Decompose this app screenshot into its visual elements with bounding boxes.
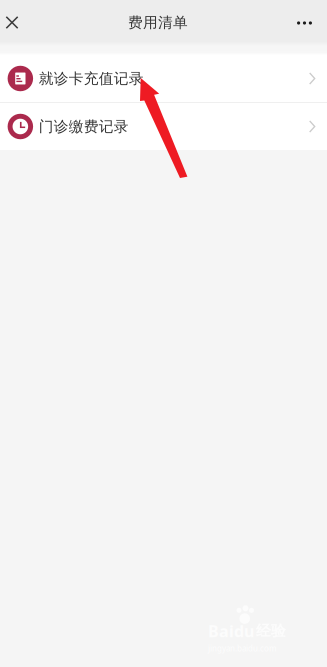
button[interactable]: More options (282, 0, 327, 42)
staticText: 就诊卡充值记录 (39, 69, 144, 87)
staticText: 门诊缴费记录 (39, 117, 129, 135)
button[interactable]: 门诊缴费记录 (0, 103, 327, 150)
staticText: 费用清单 (128, 13, 188, 31)
button[interactable]: 就诊卡充值记录 (0, 55, 327, 102)
button[interactable]: Close (0, 0, 24, 42)
